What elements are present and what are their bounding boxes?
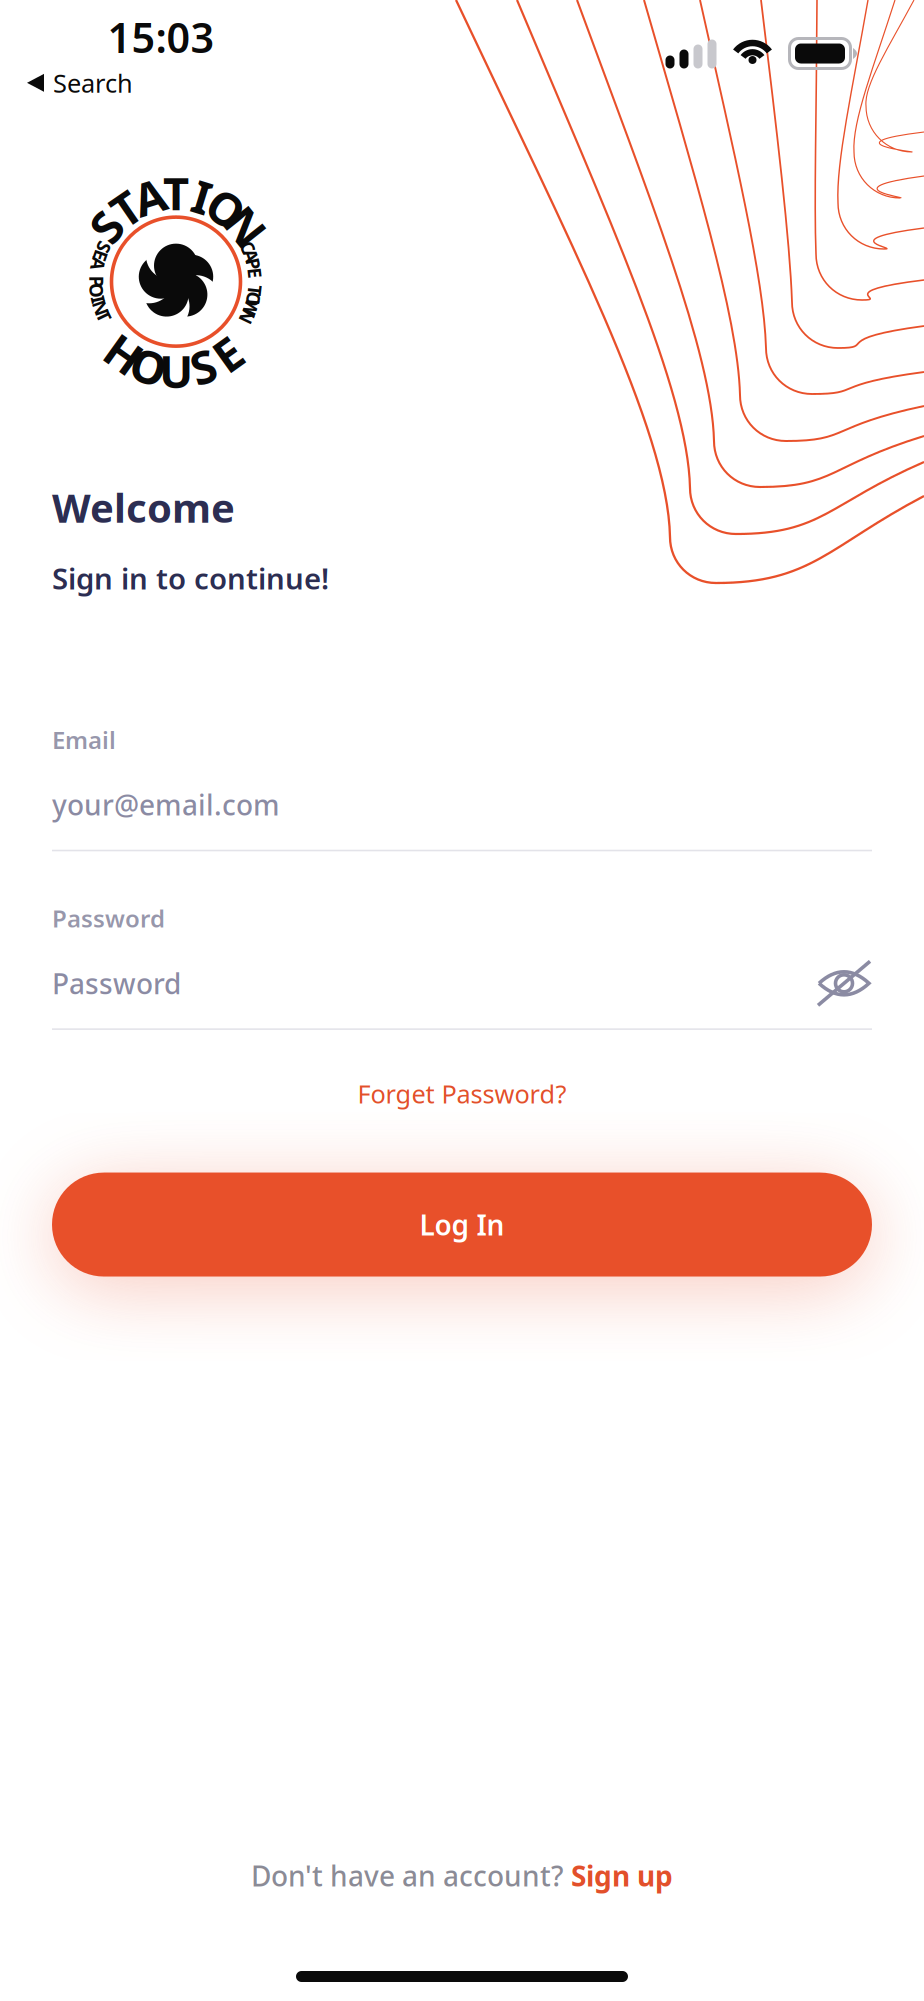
staticText: S	[163, 163, 188, 223]
staticText: Sign in to continue!	[52, 559, 329, 598]
staticText: A	[169, 190, 182, 214]
staticText: E	[171, 190, 181, 214]
staticText: Don't have an account?	[251, 1857, 571, 1894]
staticText: H	[158, 163, 193, 223]
button[interactable]: Don't have an account?	[251, 1857, 673, 1894]
staticText: S	[171, 190, 181, 214]
staticText: E	[163, 163, 188, 223]
staticText: Password	[52, 965, 181, 1002]
staticText: Welcome	[52, 481, 235, 534]
staticText: N	[168, 190, 183, 214]
staticText	[173, 190, 178, 214]
staticText: your@email.com	[52, 786, 280, 823]
button[interactable]: Forget Password?	[0, 1069, 924, 1118]
staticText: S	[163, 163, 188, 223]
staticText: T	[170, 190, 181, 214]
staticText: I	[172, 190, 179, 214]
staticText: O	[168, 190, 183, 214]
staticText: I	[167, 163, 185, 223]
staticText: A	[169, 190, 182, 214]
staticText: T	[163, 163, 189, 223]
staticText: P	[170, 190, 182, 214]
staticText: N	[157, 163, 194, 223]
staticText: Password	[52, 902, 165, 934]
button[interactable]: Search	[0, 66, 133, 106]
staticText: U	[159, 163, 193, 223]
staticText: 15:03	[107, 10, 214, 64]
staticText: O	[158, 163, 194, 223]
staticText: E	[171, 190, 181, 214]
staticText: A	[160, 163, 191, 223]
staticText: N	[168, 190, 183, 214]
staticText	[173, 190, 178, 214]
staticText: O	[158, 163, 194, 223]
button[interactable]: Show password	[816, 959, 872, 1007]
staticText: Search	[53, 66, 133, 100]
staticText: T	[170, 190, 181, 214]
button[interactable]: Log In	[52, 1173, 872, 1277]
staticText: O	[168, 190, 183, 214]
staticText: P	[170, 190, 182, 214]
staticText: C	[170, 190, 182, 214]
staticText: W	[167, 190, 185, 214]
staticText: T	[163, 163, 189, 223]
staticText: Log In	[419, 1206, 504, 1243]
staticText: Forget Password?	[357, 1077, 566, 1110]
staticText: Email	[52, 724, 116, 756]
staticText: Sign up	[571, 1857, 673, 1894]
